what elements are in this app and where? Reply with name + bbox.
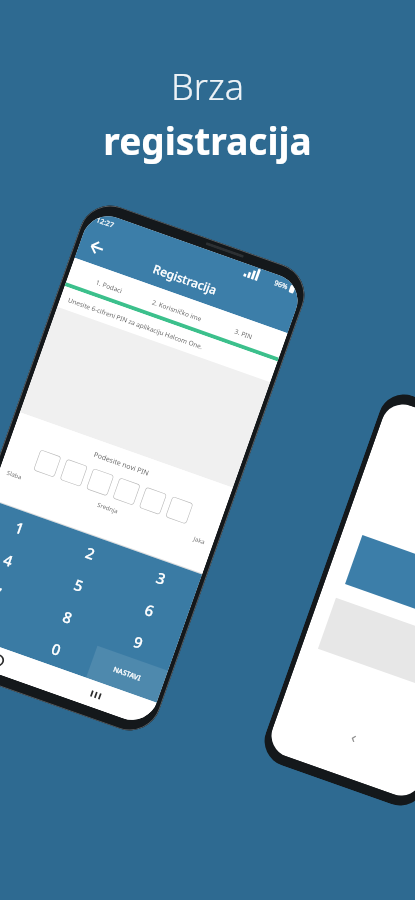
staticText: 1. Podaci — [94, 277, 124, 295]
staticText: 4 — [1, 549, 16, 571]
staticText: 2 — [83, 542, 98, 564]
button[interactable]: Halcom One registration screen preview — [0, 197, 313, 739]
button[interactable]: 4 — [0, 531, 49, 588]
button[interactable]: 1. Podaci — [70, 260, 148, 312]
staticText: 9 — [131, 631, 146, 653]
button[interactable]: 9 — [97, 614, 179, 671]
button[interactable] — [86, 468, 114, 496]
button[interactable]: 2 — [49, 524, 131, 582]
button[interactable]: 5 — [38, 556, 120, 614]
staticText: Registracija — [151, 260, 220, 298]
button[interactable]: 8 — [27, 589, 109, 646]
staticText: 7 — [0, 581, 5, 603]
button[interactable]: Home — [0, 651, 7, 669]
button[interactable] — [139, 487, 167, 515]
staticText: Slaba — [6, 469, 23, 482]
staticText: 12:27 — [95, 215, 115, 231]
button[interactable]: 3 — [120, 549, 202, 607]
button[interactable]: 1 — [0, 499, 61, 556]
button[interactable]: 3. PIN — [205, 307, 282, 359]
button[interactable] — [33, 449, 61, 477]
staticText: registracija — [103, 115, 312, 165]
button[interactable] — [112, 477, 141, 506]
button[interactable]: NASTAVI — [86, 646, 168, 703]
staticText: Unesite 6-cifreni PIN za aplikaciju Halc… — [67, 295, 205, 351]
staticText: Srednja — [96, 501, 120, 516]
button[interactable] — [0, 595, 27, 653]
button[interactable] — [165, 496, 193, 524]
staticText: 3. PIN — [233, 327, 254, 341]
button[interactable]: Back — [87, 237, 107, 258]
staticText: Podesite novi PIN — [92, 450, 150, 479]
staticText: 1 — [12, 517, 27, 539]
staticText: 0 — [49, 638, 64, 660]
staticText: Jaka — [192, 535, 206, 546]
button[interactable]: 2. Korisničko ime — [138, 284, 215, 336]
button[interactable]: 7 — [0, 563, 38, 621]
staticText: 8 — [60, 606, 75, 628]
button[interactable]: Recents — [85, 685, 103, 703]
staticText: 6 — [142, 599, 157, 621]
staticText: 96% — [271, 278, 289, 292]
staticText: Brza — [171, 62, 244, 111]
staticText: 3 — [153, 567, 169, 589]
button[interactable]: 0 — [15, 621, 97, 678]
button[interactable] — [60, 459, 88, 487]
button[interactable]: 6 — [109, 581, 191, 639]
staticText: 5 — [71, 574, 87, 596]
button[interactable]: Second phone preview — [257, 387, 415, 813]
staticText: 2. Korisničko ime — [151, 297, 203, 323]
staticText: NASTAVI — [112, 665, 142, 684]
staticText: ‹ — [348, 726, 360, 748]
